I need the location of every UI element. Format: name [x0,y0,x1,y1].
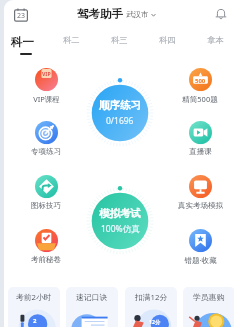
button[interactable]: 科四 [150,35,184,61]
button[interactable]: 考前2小时 [8,287,60,327]
staticText: 拿本 [207,35,224,45]
staticText: 真实考场模拟 [178,201,223,210]
staticText: 12分 [149,318,161,325]
staticText: 扣满12分 [135,292,168,303]
staticText: 科二 [63,35,80,45]
button[interactable]: 扣满12分 [125,287,177,327]
staticText: 图标技巧 [31,201,61,210]
button[interactable]: 错题·收藏 [173,229,227,264]
button[interactable]: 科三 [102,35,136,61]
button[interactable]: 图标技巧 [19,175,73,210]
staticText: 科一 [11,35,34,49]
staticText: 精简500题 [182,94,218,103]
staticText: 考前秘卷 [31,255,61,264]
button[interactable]: 速记口诀 [66,287,118,327]
staticText: 100%仿真 [101,223,140,235]
staticText: VIP [42,70,51,77]
button[interactable]: 500 [173,68,227,103]
staticText: 考前2小时 [16,292,52,303]
button[interactable]: 拿本 [198,35,232,61]
button[interactable]: 学员惠购 [183,287,234,327]
button[interactable]: 科一 [5,35,39,61]
staticText: 武汉市 [126,10,149,19]
staticText: 错题·收藏 [184,255,217,264]
button[interactable]: 专项练习 [19,121,73,156]
button[interactable]: VIP [19,68,73,103]
staticText: 专项练习 [31,147,61,156]
staticText: 模拟考试 [99,207,141,220]
staticText: 速记口诀 [76,292,108,302]
staticText: 科四 [159,35,176,45]
button[interactable]: 考前秘卷 [19,229,73,264]
button[interactable]: 顺序练习 [85,78,155,148]
staticText: 23 [17,11,26,21]
button[interactable]: 驾考助手 [77,7,156,21]
staticText: 直播课 [189,147,212,156]
button[interactable]: 模拟考试 [85,186,155,256]
button[interactable]: 科二 [54,35,88,61]
staticText: 0/1696 [106,115,134,127]
staticText: 科三 [111,35,128,45]
button[interactable]: Notifications [212,5,230,23]
button[interactable]: 真实考场模拟 [173,175,227,210]
button[interactable]: 直播课 [173,121,227,156]
staticText: 顺序练习 [99,99,141,112]
staticText: VIP课程 [33,94,60,103]
staticText: 驾考助手 [77,7,123,21]
staticText: 学员惠购 [193,292,225,302]
staticText: 500 [195,77,206,85]
staticText: 2 [33,317,37,325]
button[interactable]: Calendar [11,5,31,24]
